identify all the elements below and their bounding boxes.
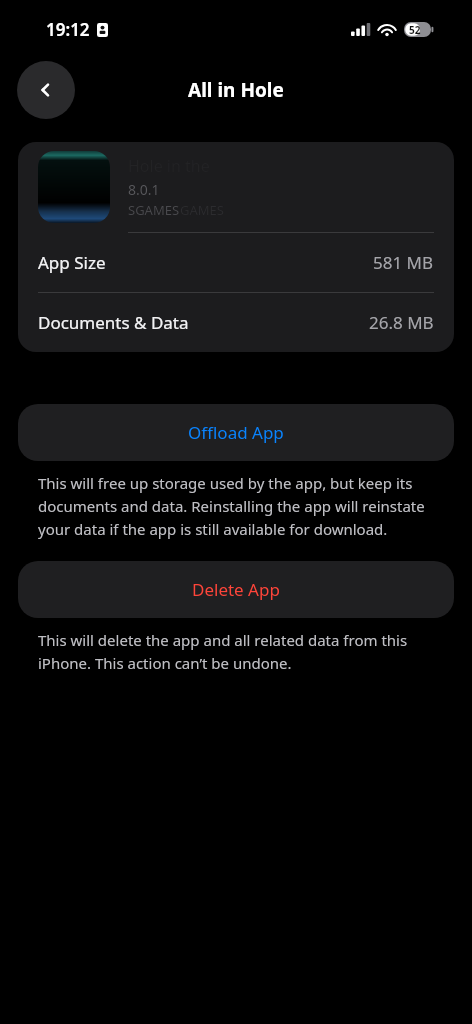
staticText: This will free up storage used by the ap…: [38, 473, 434, 539]
button[interactable]: Hole in the: [18, 142, 454, 232]
staticText: GAMES: [180, 201, 224, 219]
staticText: 26.8 MB: [369, 311, 434, 334]
staticText: Delete App: [192, 578, 280, 601]
button[interactable]: Back: [17, 61, 75, 119]
button[interactable]: App Size: [18, 233, 454, 292]
staticText: 19:12: [46, 18, 90, 41]
staticText: 52: [409, 23, 421, 37]
staticText: Offload App: [188, 421, 284, 444]
staticText: 8.0.1: [128, 180, 160, 199]
staticText: All in Hole: [188, 77, 284, 103]
staticText: This will delete the app and all related…: [38, 630, 434, 673]
staticText: App Size: [38, 251, 106, 274]
staticText: 581 MB: [373, 251, 434, 274]
staticText: SGAMES: [128, 201, 180, 219]
button[interactable]: Delete App: [18, 561, 454, 618]
staticText: Documents & Data: [38, 311, 189, 334]
button[interactable]: Documents & Data: [18, 293, 454, 352]
button[interactable]: Offload App: [18, 404, 454, 461]
